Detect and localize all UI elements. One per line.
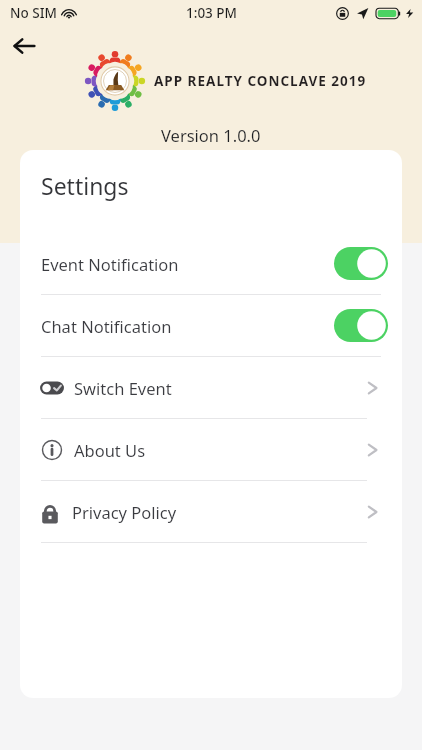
staticText: Privacy Policy	[72, 501, 177, 523]
staticText: Event Notification	[41, 253, 179, 275]
button[interactable]: Switch Event	[20, 357, 402, 418]
staticText: Chat Notification	[41, 315, 172, 337]
button[interactable]: Event Notification	[20, 233, 402, 294]
button[interactable]: Privacy Policy	[20, 481, 402, 542]
button[interactable]: Chat Notification	[20, 295, 402, 356]
staticText: 1:03 PM	[186, 4, 237, 22]
staticText: Switch Event	[74, 377, 172, 399]
staticText: About Us	[74, 439, 146, 461]
button[interactable]: Back	[6, 28, 42, 64]
button[interactable]: About Us	[20, 419, 402, 480]
staticText: No SIM	[10, 4, 57, 22]
staticText: Version 1.0.0	[161, 124, 261, 146]
staticText: Settings	[41, 170, 129, 201]
staticText: APP REALTY CONCLAVE 2019	[154, 72, 367, 90]
